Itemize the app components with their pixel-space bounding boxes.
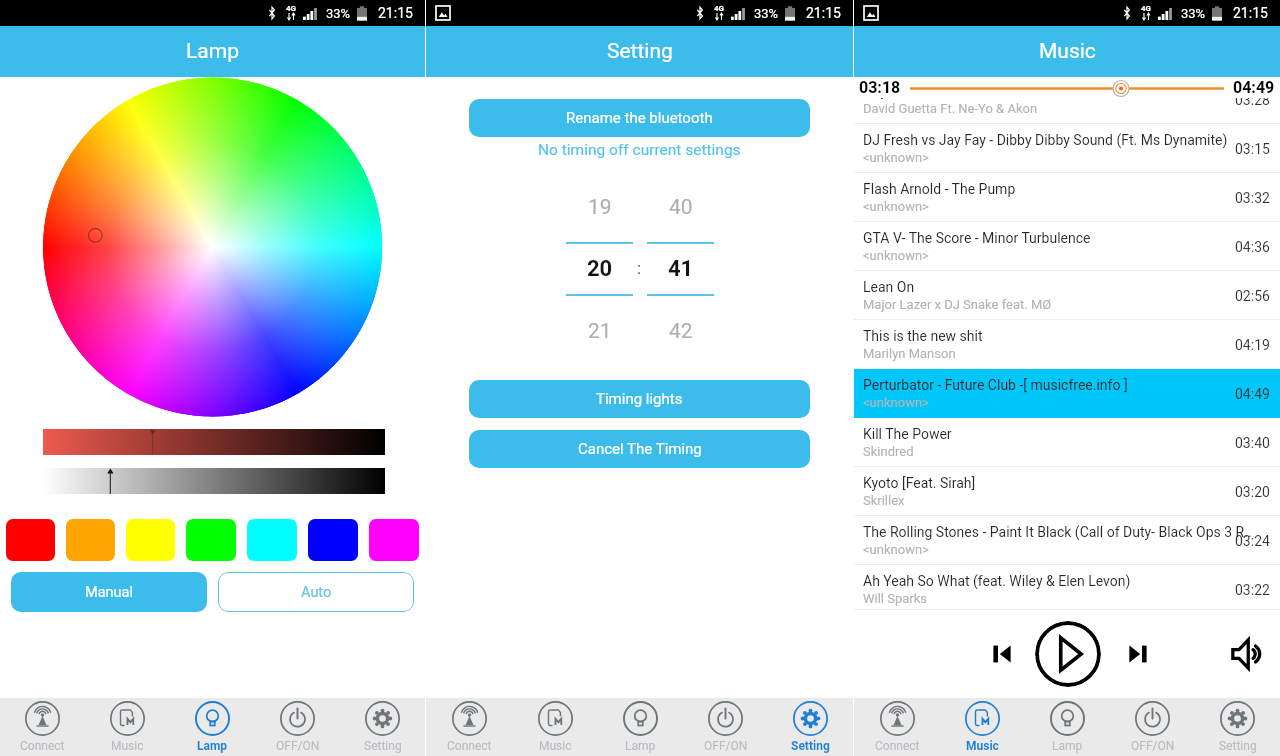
staticText: <unknown> (863, 542, 929, 557)
button[interactable]: 03:24 (854, 516, 1280, 565)
staticText: Perturbator - Future Club -[ musicfree.i… (863, 377, 1128, 393)
staticText: Connect (447, 739, 492, 753)
button[interactable]: Colour preset (6, 519, 55, 561)
button[interactable]: OFF/ON (1110, 698, 1195, 756)
staticText: : (637, 258, 642, 278)
button[interactable]: 03:32 (854, 173, 1280, 222)
staticText: 21:15 (1233, 5, 1268, 21)
button[interactable]: Auto (218, 572, 414, 612)
button[interactable]: Music (85, 698, 170, 756)
button[interactable]: 40 (640, 180, 721, 358)
staticText: <unknown> (863, 395, 929, 410)
button[interactable]: Colour preset (308, 519, 358, 561)
button[interactable]: Lamp (1025, 698, 1110, 756)
staticText: 33% (326, 6, 351, 21)
staticText: The Rolling Stones - Paint It Black (Cal… (863, 524, 1252, 540)
staticText: Lamp (1052, 739, 1083, 753)
button[interactable]: Colour preset (126, 519, 175, 561)
button[interactable]: 03:28 (854, 77, 1280, 124)
staticText: 03:32 (1235, 190, 1270, 206)
button[interactable]: Colour preset (66, 519, 115, 561)
button[interactable]: 02:56 (854, 271, 1280, 320)
staticText: 03:20 (1235, 484, 1270, 500)
staticText: Hey Mama (863, 83, 931, 99)
button[interactable]: 04:49 (854, 369, 1280, 418)
staticText: Setting (791, 739, 830, 753)
staticText: Timing lights (596, 390, 683, 408)
button[interactable]: Colour preset (186, 519, 236, 561)
button[interactable]: Setting (340, 698, 425, 756)
button[interactable]: Lamp (170, 698, 255, 756)
staticText: 4G (286, 4, 297, 13)
button[interactable]: 03:20 (854, 467, 1280, 516)
button[interactable]: Previous (982, 634, 1022, 674)
button[interactable]: 04:36 (854, 222, 1280, 271)
button[interactable]: Setting (768, 698, 853, 756)
staticText: Manual (85, 584, 133, 601)
button[interactable]: Seek (901, 77, 1233, 98)
staticText: GTA V- The Score - Minor Turbulence (863, 230, 1091, 246)
button[interactable]: 03:15 (854, 124, 1280, 173)
staticText: 19 (588, 195, 612, 220)
staticText: 02:56 (1235, 288, 1270, 304)
staticText: Setting (607, 39, 673, 64)
button[interactable]: Manual (11, 572, 207, 612)
staticText: Rename the bluetooth (566, 109, 713, 127)
button[interactable]: OFF/ON (255, 698, 340, 756)
staticText: 04:19 (1235, 337, 1270, 353)
staticText: DJ Fresh vs Jay Fay - Dibby Dibby Sound … (863, 132, 1228, 148)
staticText: David Guetta Ft. Ne-Yo & Akon (863, 101, 1038, 116)
button[interactable]: Play (1035, 621, 1101, 687)
staticText: 04:49 (1233, 78, 1275, 97)
button[interactable]: Cancel The Timing (469, 430, 810, 468)
button[interactable]: Colour preset (369, 519, 419, 561)
staticText: OFF/ON (1131, 739, 1175, 753)
staticText: <unknown> (863, 199, 929, 214)
button[interactable]: OFF/ON (683, 698, 768, 756)
button[interactable]: 03:22 (854, 565, 1280, 614)
button[interactable]: Timing lights (469, 380, 810, 418)
staticText: Lean On (863, 279, 915, 295)
staticText: 03:40 (1235, 435, 1270, 451)
staticText: 04:49 (1235, 386, 1270, 402)
staticText: 04:36 (1235, 239, 1270, 255)
button[interactable]: Music (940, 698, 1025, 756)
button[interactable]: 04:19 (854, 320, 1280, 369)
staticText: 41 (668, 256, 694, 282)
button[interactable]: 03:40 (854, 418, 1280, 467)
staticText: Lamp (186, 39, 239, 64)
staticText: 42 (669, 319, 693, 344)
staticText: 03:28 (1235, 92, 1270, 108)
staticText: 33% (754, 6, 779, 21)
staticText: 03:18 (859, 78, 901, 97)
staticText: 21 (588, 319, 612, 344)
staticText: Lamp (197, 739, 228, 753)
button[interactable]: Music (512, 698, 598, 756)
staticText: OFF/ON (704, 739, 748, 753)
button[interactable]: Connect (426, 698, 512, 756)
button[interactable]: Lamp (598, 698, 683, 756)
staticText: Ah Yeah So What (feat. Wiley & Elen Levo… (863, 573, 1131, 589)
button[interactable]: Rename the bluetooth (469, 99, 810, 137)
staticText: Will Sparks (863, 591, 928, 606)
staticText: Lamp (625, 739, 656, 753)
staticText: OFF/ON (276, 739, 320, 753)
staticText: 03:15 (1235, 141, 1270, 157)
button[interactable]: Volume (1228, 632, 1272, 676)
staticText: 21:15 (378, 5, 413, 21)
staticText: Music (1039, 39, 1096, 64)
staticText: No timing off current settings (538, 141, 741, 159)
staticText: Setting (364, 739, 402, 753)
staticText: Kyoto [Feat. Sirah] (863, 475, 976, 491)
button[interactable]: 19 (559, 180, 640, 358)
button[interactable]: Connect (0, 698, 85, 756)
button[interactable]: Setting (1195, 698, 1280, 756)
staticText: Connect (20, 739, 65, 753)
button[interactable]: Colour preset (247, 519, 297, 561)
staticText: 21:15 (806, 5, 841, 21)
staticText: 03:22 (1235, 582, 1270, 598)
staticText: Kill The Power (863, 426, 952, 442)
button[interactable]: Connect (854, 698, 940, 756)
staticText: Connect (875, 739, 920, 753)
button[interactable]: Next (1118, 634, 1158, 674)
